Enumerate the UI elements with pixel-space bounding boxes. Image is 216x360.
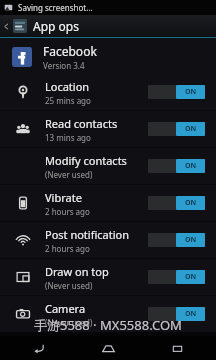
staticText: 25 mins ago: [45, 95, 91, 106]
other: Navigate up: [3, 23, 10, 30]
staticText: ON: [185, 161, 197, 171]
staticText: Saving screenshot...: [18, 2, 93, 13]
staticText: Version 3.4: [43, 60, 85, 71]
button[interactable]: Draw on top: [0, 259, 216, 295]
staticText: (Never used): [45, 169, 93, 180]
button[interactable]: Recent apps: [147, 336, 207, 360]
staticText: ON: [185, 235, 197, 245]
button[interactable]: Toggle permission: [148, 84, 205, 100]
button[interactable]: Vibrate: [0, 185, 216, 221]
button[interactable]: Navigate up: [0, 15, 216, 37]
staticText: (Never used): [45, 317, 93, 328]
button[interactable]: Facebook: [0, 39, 216, 74]
button[interactable]: Location: [0, 74, 216, 110]
staticText: ON: [185, 124, 197, 134]
button[interactable]: Toggle permission: [148, 269, 205, 285]
staticText: (Never used): [45, 280, 93, 291]
staticText: ON: [185, 309, 197, 319]
staticText: ON: [185, 198, 197, 208]
staticText: 13 mins ago: [45, 132, 91, 143]
button[interactable]: Toggle permission: [148, 158, 205, 174]
button[interactable]: Back: [9, 336, 69, 360]
staticText: ON: [185, 87, 197, 97]
staticText: Post notification: [45, 227, 130, 242]
staticText: Draw on top: [45, 264, 109, 279]
button[interactable]: Toggle permission: [148, 232, 205, 248]
staticText: 2 hours ago: [45, 243, 90, 254]
button[interactable]: Toggle permission: [148, 195, 205, 211]
button[interactable]: Modify contacts: [0, 148, 216, 184]
staticText: 2 hours ago: [45, 206, 90, 217]
staticText: Read contacts: [45, 116, 118, 131]
button[interactable]: Toggle permission: [148, 306, 205, 322]
button[interactable]: Home: [78, 336, 138, 360]
staticText: App ops: [33, 18, 79, 34]
staticText: Location: [45, 79, 90, 94]
button[interactable]: Toggle permission: [148, 121, 205, 137]
staticText: Vibrate: [45, 190, 82, 205]
staticText: Modify contacts: [45, 153, 127, 168]
button[interactable]: Post notification: [0, 222, 216, 258]
staticText: Camera: [45, 301, 86, 316]
staticText: 手游5588 · MX5588.COM: [34, 316, 182, 334]
button[interactable]: Read contacts: [0, 111, 216, 147]
staticText: Facebook: [43, 43, 97, 59]
staticText: ON: [185, 272, 197, 282]
button[interactable]: Camera: [0, 296, 216, 332]
